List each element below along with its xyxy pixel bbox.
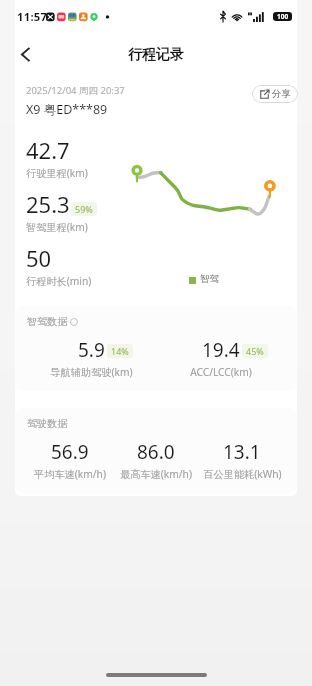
staticText: 行驶里程(km) <box>26 166 88 180</box>
staticText: 86.0 <box>137 439 175 465</box>
button[interactable]: Back <box>5 34 45 74</box>
staticText: ACC/LCC(km) <box>190 365 252 379</box>
staticText: 14% <box>111 345 129 357</box>
staticText: 11:57 <box>17 9 48 24</box>
staticText: 5.9 <box>78 337 105 363</box>
button[interactable]: 分享 <box>252 85 298 103</box>
staticText: 100 <box>277 12 289 21</box>
staticText: 智驾 <box>200 273 219 285</box>
staticText: 行程记录 <box>128 46 184 64</box>
staticText: 45% <box>246 345 264 357</box>
staticText: 最高车速(km/h) <box>120 467 192 481</box>
staticText: 平均车速(km/h) <box>34 467 106 481</box>
staticText: 分享 <box>272 88 291 100</box>
staticText: 2025/12/04 周四 20:37 <box>26 84 125 97</box>
staticText: 50 <box>26 243 52 273</box>
staticText: 19.4 <box>202 337 240 363</box>
staticText: 42.7 <box>26 135 70 165</box>
staticText: 驾驶数据 <box>27 417 68 430</box>
staticText: 25.3 <box>26 189 70 219</box>
staticText: 13.1 <box>223 439 261 465</box>
staticText: 智驾数据 <box>27 315 68 328</box>
staticText: 百公里能耗(kWh) <box>203 467 282 481</box>
staticText: 智驾里程(km) <box>26 220 88 234</box>
staticText: 56.9 <box>51 439 89 465</box>
staticText: 导航辅助驾驶(km) <box>50 365 133 379</box>
staticText: X9 粤ED***89 <box>26 101 108 118</box>
staticText: 行程时长(min) <box>26 274 92 288</box>
staticText: 59% <box>75 203 93 215</box>
